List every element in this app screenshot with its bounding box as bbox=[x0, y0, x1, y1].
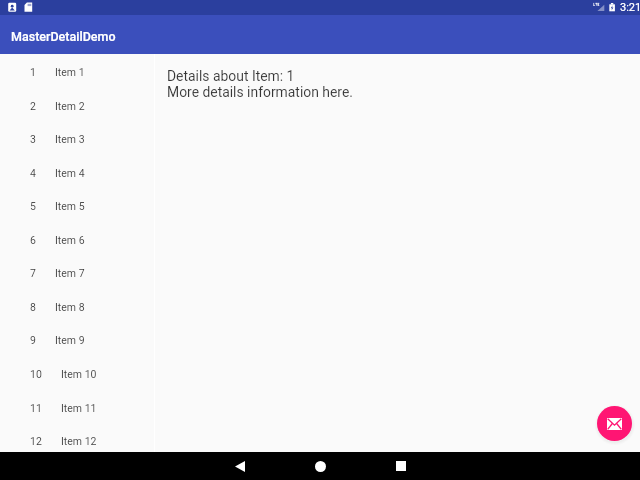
button[interactable]: 4 bbox=[0, 156, 154, 190]
staticText: Item 3 bbox=[55, 133, 85, 145]
button[interactable]: 9 bbox=[0, 323, 154, 357]
button[interactable]: Recent apps bbox=[360, 452, 440, 480]
button[interactable]: Back bbox=[200, 452, 280, 480]
staticText: 3 bbox=[30, 133, 36, 145]
staticText: Item 11 bbox=[61, 402, 97, 414]
staticText: 3:21 bbox=[620, 1, 640, 14]
staticText: 6 bbox=[30, 234, 36, 246]
staticText: Item 7 bbox=[55, 267, 85, 279]
staticText: Item 8 bbox=[55, 301, 85, 313]
staticText: 7 bbox=[30, 267, 36, 279]
staticText: 11 bbox=[30, 402, 42, 414]
staticText: Item 10 bbox=[61, 368, 97, 380]
button[interactable]: 12 bbox=[0, 424, 154, 458]
staticText: 12 bbox=[30, 435, 42, 447]
button[interactable]: 7 bbox=[0, 256, 154, 290]
staticText: 5 bbox=[30, 200, 36, 212]
button[interactable]: 8 bbox=[0, 290, 154, 324]
staticText: MasterDetailDemo bbox=[11, 29, 116, 44]
staticText: Item 1 bbox=[55, 66, 85, 78]
staticText: More details information here. bbox=[167, 84, 353, 100]
staticText: 9 bbox=[30, 334, 36, 346]
staticText: Item 2 bbox=[55, 100, 85, 112]
button[interactable]: 3 bbox=[0, 122, 154, 156]
button[interactable]: 11 bbox=[0, 391, 154, 425]
staticText: Item 6 bbox=[55, 234, 85, 246]
button[interactable]: 6 bbox=[0, 223, 154, 257]
button[interactable]: 10 bbox=[0, 357, 154, 391]
staticText: Item 4 bbox=[55, 167, 85, 179]
button[interactable]: 2 bbox=[0, 89, 154, 123]
staticText: Details about Item: 1 bbox=[167, 68, 295, 84]
staticText: Item 9 bbox=[55, 334, 85, 346]
staticText: Item 5 bbox=[55, 200, 85, 212]
staticText: 8 bbox=[30, 301, 36, 313]
button[interactable]: 5 bbox=[0, 189, 154, 223]
staticText: 10 bbox=[30, 368, 42, 380]
button[interactable]: Home bbox=[280, 452, 360, 480]
button[interactable]: Compose email bbox=[597, 406, 632, 441]
staticText: 1 bbox=[30, 66, 36, 78]
staticText: Item 12 bbox=[61, 435, 97, 447]
staticText: 4 bbox=[30, 167, 36, 179]
staticText: 2 bbox=[30, 100, 36, 112]
button[interactable]: 1 bbox=[0, 55, 154, 89]
